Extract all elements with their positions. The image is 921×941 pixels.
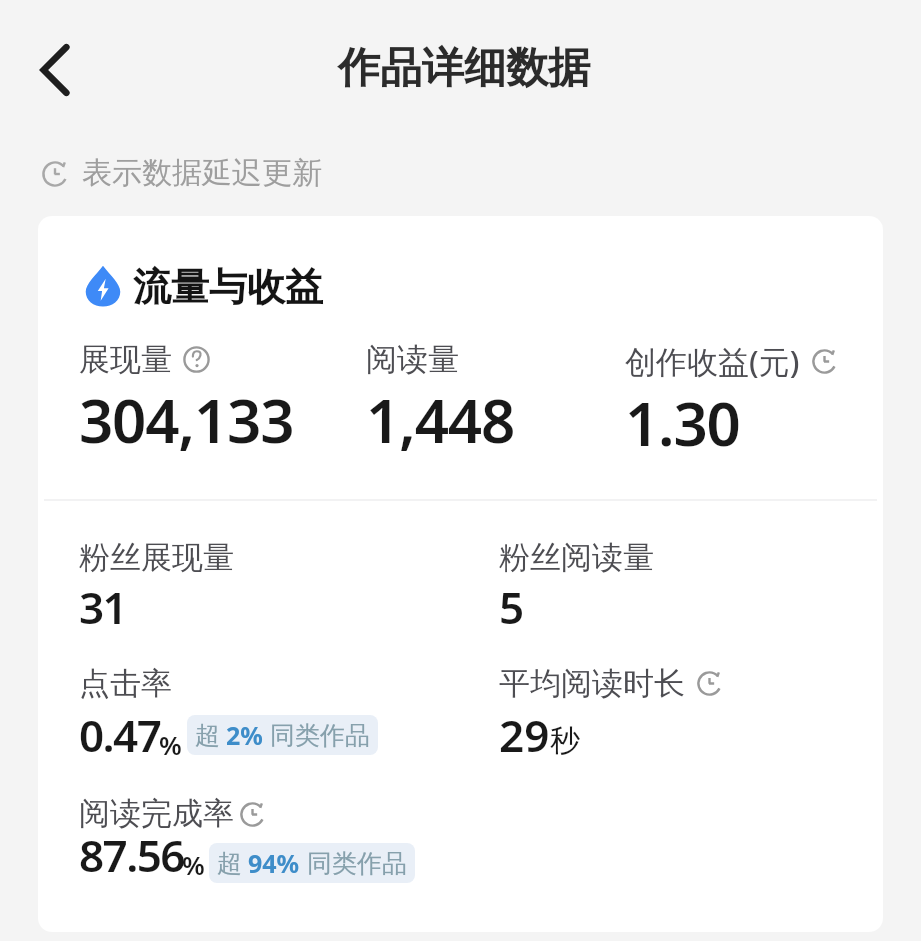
staticText: 同类作品 bbox=[270, 720, 370, 751]
staticText: 2% bbox=[226, 718, 263, 752]
staticText: 同类作品 bbox=[307, 848, 407, 879]
button[interactable]: Delayed update bbox=[239, 801, 266, 828]
staticText: 阅读量 bbox=[366, 340, 459, 379]
button[interactable]: 阅读量 bbox=[366, 340, 515, 461]
button[interactable]: Delayed update bbox=[696, 670, 723, 697]
staticText: % bbox=[159, 727, 182, 762]
staticText: 94% bbox=[248, 846, 300, 880]
staticText: 29 bbox=[499, 705, 550, 765]
staticText: 点击率 bbox=[79, 664, 172, 703]
staticText: 平均阅读时长 bbox=[499, 664, 685, 703]
staticText: 304,133 bbox=[79, 379, 294, 461]
staticText: 作品详细数据 bbox=[338, 42, 590, 95]
button[interactable]: 展现量 bbox=[79, 340, 294, 461]
button[interactable]: Back bbox=[24, 39, 86, 101]
staticText: 1.30 bbox=[625, 382, 740, 464]
button[interactable]: What is 展现量 bbox=[183, 346, 210, 373]
staticText: 0.47 bbox=[79, 705, 161, 765]
staticText: 流量与收益 bbox=[133, 263, 323, 311]
staticText: 1,448 bbox=[366, 379, 515, 461]
staticText: 展现量 bbox=[79, 340, 172, 379]
staticText: 创作收益(元) bbox=[625, 340, 800, 382]
staticText: 超 bbox=[195, 720, 220, 751]
button[interactable]: 粉丝阅读量 bbox=[499, 538, 654, 637]
staticText: 87.56 bbox=[79, 825, 184, 885]
staticText: 5 bbox=[499, 577, 523, 637]
staticText: 粉丝阅读量 bbox=[499, 538, 654, 577]
staticText: % bbox=[182, 847, 205, 882]
button[interactable]: 创作收益(元) bbox=[625, 340, 838, 464]
button[interactable]: Delayed update bbox=[811, 348, 838, 375]
button[interactable]: 粉丝展现量 bbox=[79, 538, 234, 637]
staticText: 31 bbox=[79, 577, 127, 637]
staticText: 粉丝展现量 bbox=[79, 538, 234, 577]
staticText: 表示数据延迟更新 bbox=[82, 154, 322, 192]
staticText: 超 bbox=[217, 848, 242, 879]
staticText: 秒 bbox=[550, 722, 580, 760]
staticText: 阅读完成率 bbox=[79, 794, 234, 833]
